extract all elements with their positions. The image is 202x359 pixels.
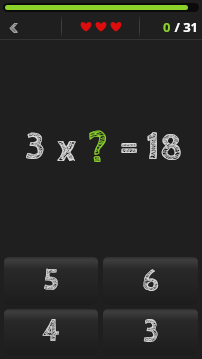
staticText: x [57,127,77,171]
staticText: 3 [25,125,46,169]
staticText: 0 [163,18,171,36]
button[interactable]: Back [0,14,61,39]
button[interactable]: 6 [103,257,198,305]
staticText: 6 [142,264,159,299]
button[interactable]: 4 [4,309,98,355]
staticText: / 31 [171,18,199,36]
staticText: 5 [43,264,59,299]
staticText: ? [88,123,108,172]
staticText: 3 [143,315,159,350]
staticText: = [119,125,139,169]
button[interactable]: 5 [4,257,98,305]
staticText: 18 [146,126,183,170]
button[interactable]: 3 [103,309,198,355]
staticText: < [9,14,19,39]
staticText: 4 [42,315,60,350]
